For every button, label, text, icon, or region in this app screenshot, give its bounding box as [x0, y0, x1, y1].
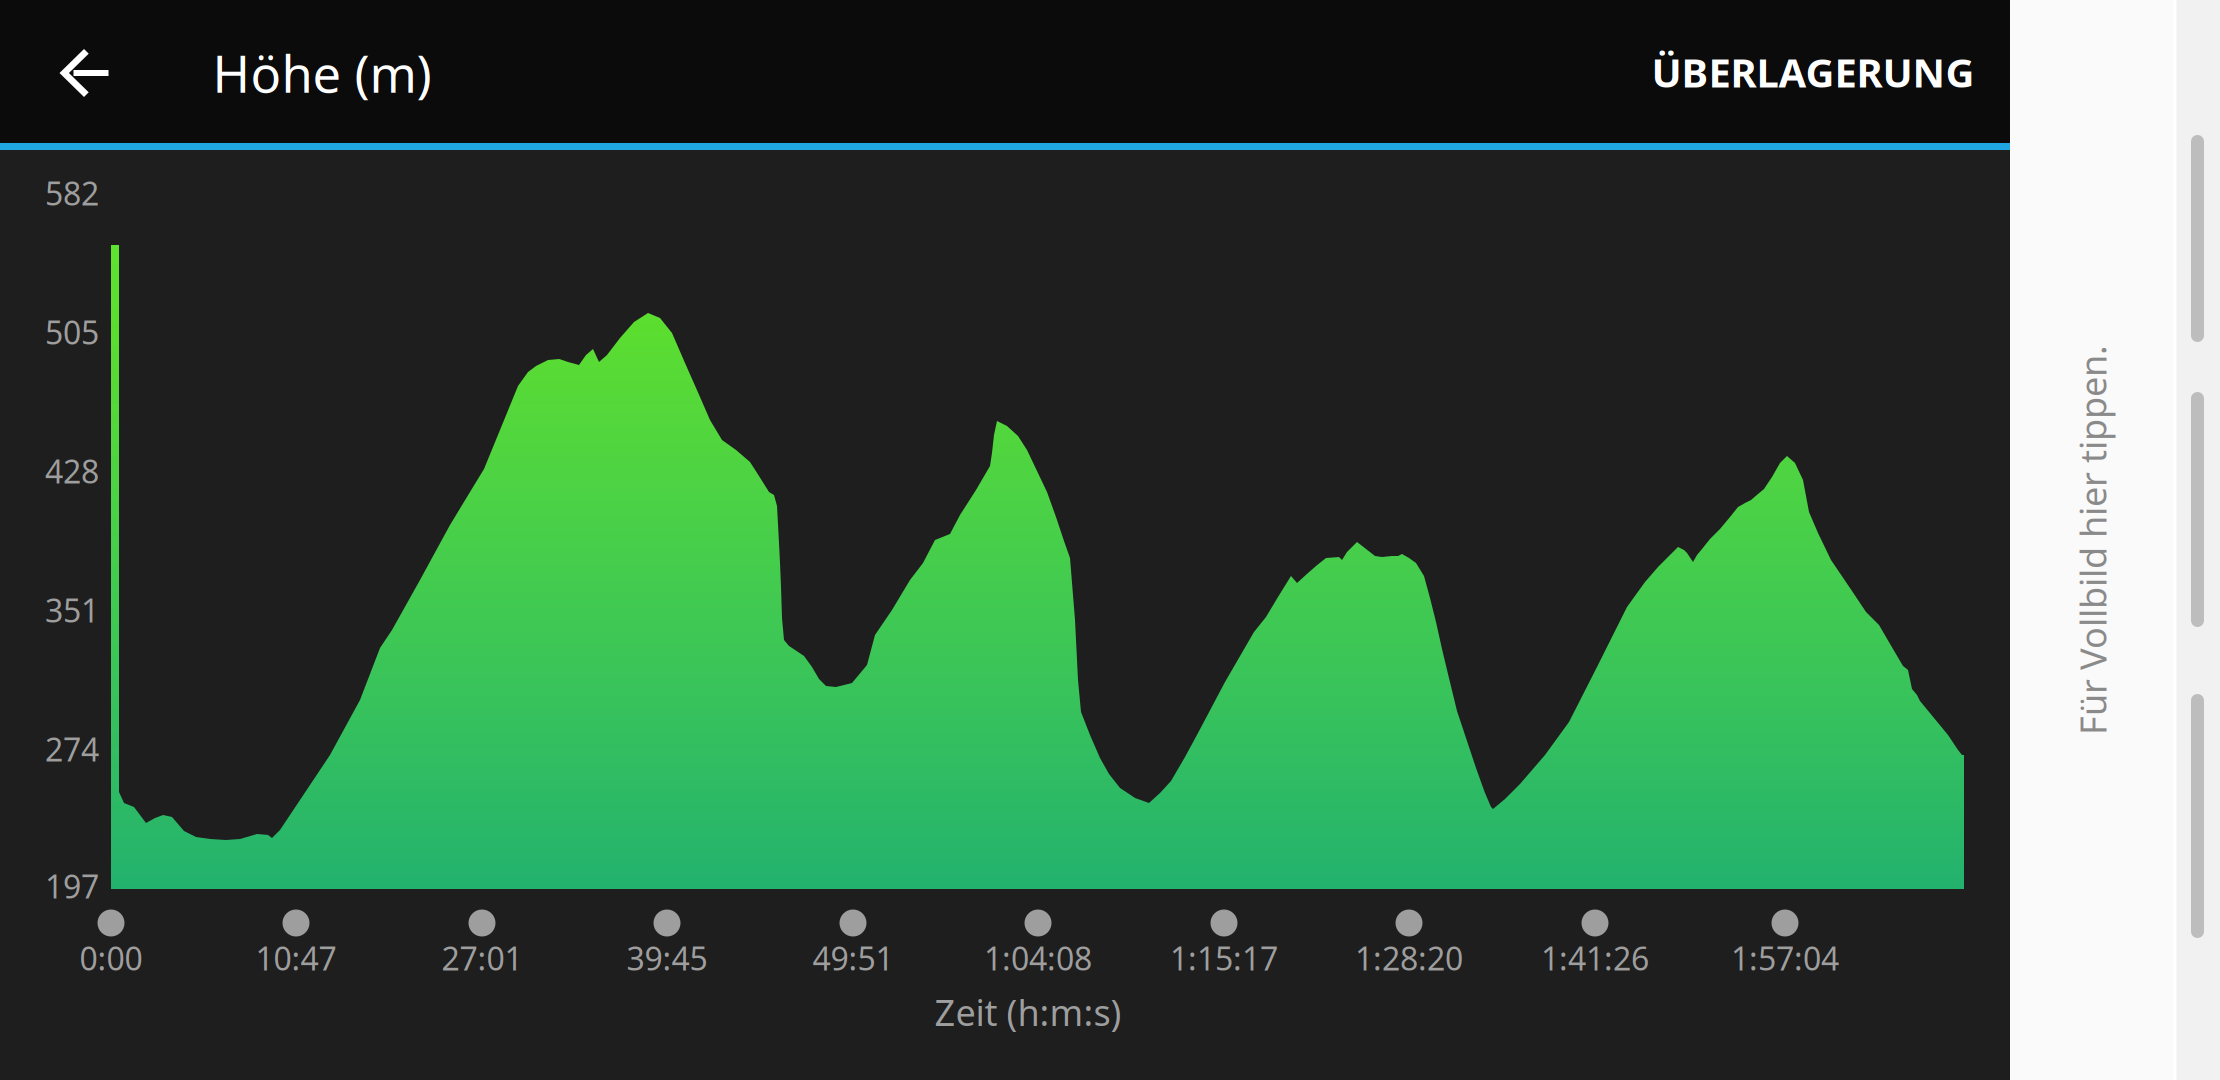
staticText: 505: [45, 311, 99, 353]
staticText: 274: [45, 728, 99, 770]
staticText: 1:04:08: [984, 937, 1092, 979]
staticText: 27:01: [441, 937, 522, 979]
staticText: 0:00: [79, 937, 142, 979]
staticText: Höhe (m): [212, 39, 431, 107]
button[interactable]: ÜBERLAGERUNG: [1627, 0, 1998, 143]
staticText: 39:45: [626, 937, 707, 979]
button[interactable]: Höhe (m): [212, 1, 431, 144]
button[interactable]: Für Vollbild hier tippen.: [2010, 240, 2175, 840]
staticText: 49:51: [812, 937, 893, 979]
button[interactable]: Back: [29, 2, 139, 145]
staticText: 1:57:04: [1731, 937, 1839, 979]
staticText: 582: [45, 172, 99, 214]
staticText: ÜBERLAGERUNG: [1651, 45, 1974, 98]
staticText: Zeit (h:m:s): [934, 988, 1121, 1036]
staticText: Für Vollbild hier tippen.: [1897, 516, 2220, 564]
staticText: 1:15:17: [1170, 937, 1278, 979]
staticText: 197: [45, 865, 99, 907]
staticText: 428: [45, 450, 99, 492]
staticText: 1:28:20: [1355, 937, 1463, 979]
staticText: 1:41:26: [1541, 937, 1649, 979]
staticText: 351: [45, 589, 99, 631]
staticText: 10:47: [255, 937, 336, 979]
